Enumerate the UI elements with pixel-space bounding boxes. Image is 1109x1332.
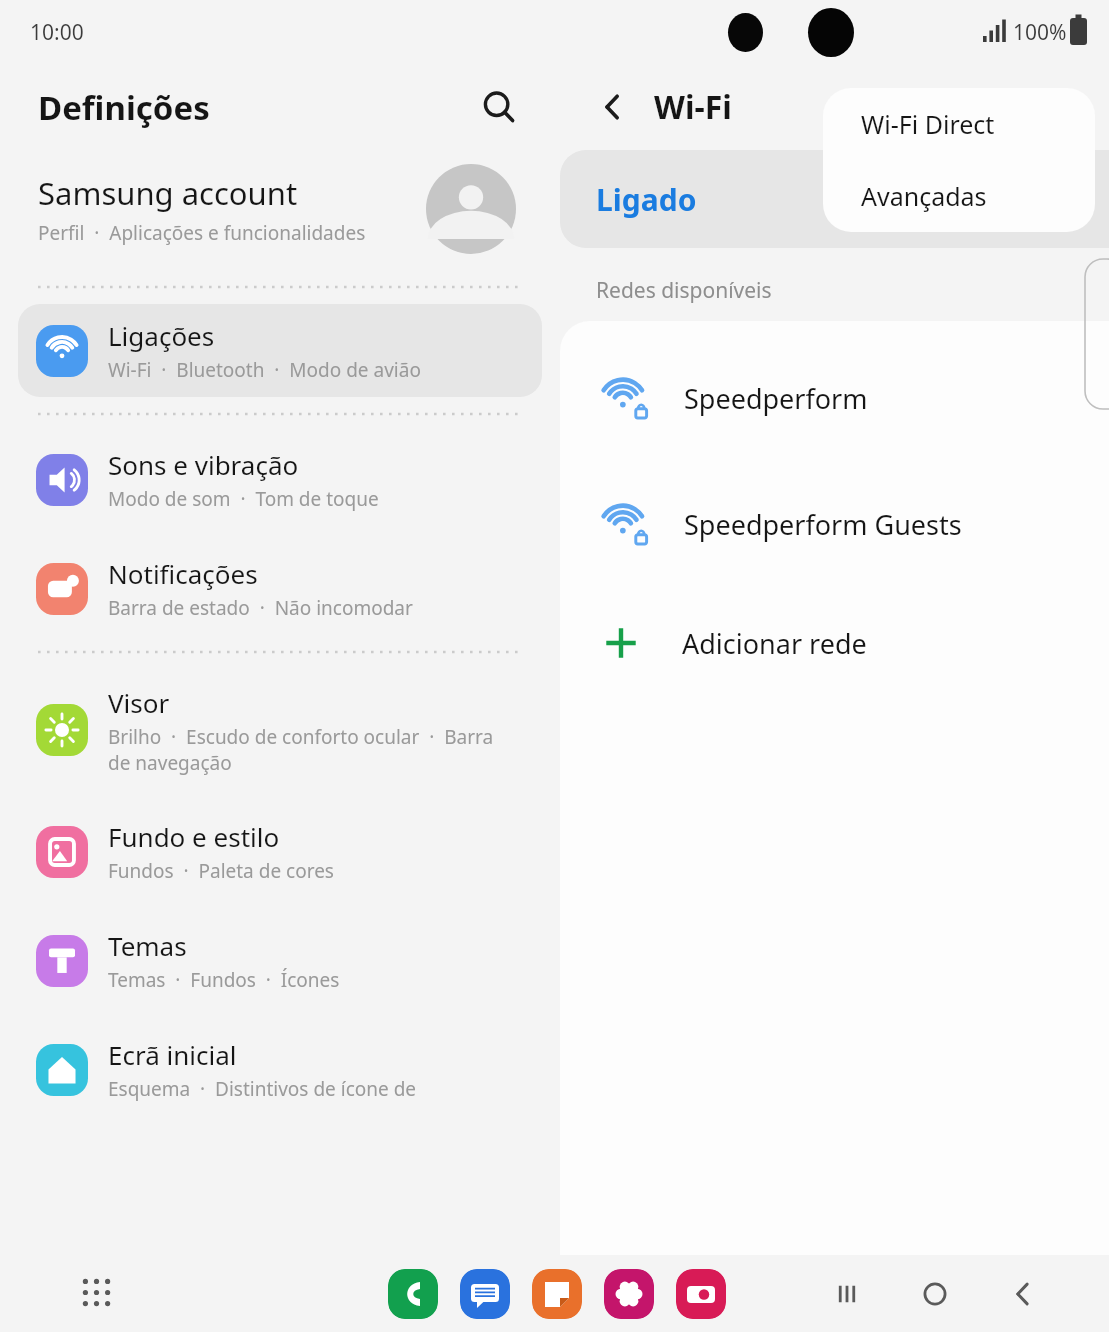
staticText: Definições — [38, 85, 210, 130]
staticText: Speedperform — [684, 380, 868, 417]
staticText: Speedperform Guests — [684, 506, 962, 543]
staticText: Ligado — [596, 179, 697, 220]
button[interactable]: Aplicações — [70, 1266, 126, 1322]
button[interactable]: Mensagens — [460, 1269, 510, 1319]
button[interactable]: Speedperform — [560, 335, 1109, 461]
button[interactable]: Telefone — [388, 1269, 438, 1319]
staticText: Fundos · Paleta de cores — [108, 858, 334, 884]
staticText: Wi-Fi Direct — [861, 107, 995, 141]
staticText: Samsung account — [38, 172, 298, 214]
button[interactable]: Início — [909, 1268, 961, 1320]
button[interactable]: Voltar — [997, 1268, 1049, 1320]
staticText: Adicionar rede — [682, 625, 867, 662]
button[interactable]: Câmara — [676, 1269, 726, 1319]
button[interactable]: Temas — [18, 914, 542, 1007]
staticText: Ecrã inicial — [108, 1037, 237, 1072]
button[interactable]: Adicionar rede — [560, 587, 1109, 699]
button[interactable]: Notificações — [18, 542, 542, 635]
staticText: Wi-Fi — [654, 85, 732, 129]
button[interactable]: Visor — [18, 671, 542, 789]
button[interactable]: Pesquisar — [472, 80, 526, 134]
staticText: Avançadas — [861, 179, 987, 213]
button[interactable]: Recentes — [821, 1268, 873, 1320]
staticText: Ligações — [108, 318, 215, 353]
button[interactable]: Samsung account — [0, 150, 560, 272]
button[interactable]: Ligações — [18, 304, 542, 397]
staticText: Sons e vibração — [108, 447, 299, 482]
button[interactable]: Galaxy Store — [604, 1269, 654, 1319]
staticText: Barra de estado · Não incomodar — [108, 595, 413, 621]
staticText: Brilho · Escudo de conforto ocular · Bar… — [108, 724, 494, 775]
button[interactable]: Sons e vibração — [18, 433, 542, 526]
staticText: 100% — [1013, 18, 1067, 47]
staticText: Esquema · Distintivos de ícone de — [108, 1076, 417, 1102]
staticText: Redes disponíveis — [596, 276, 772, 305]
button[interactable]: Avançadas — [823, 160, 1095, 232]
staticText: Perfil · Aplicações e funcionalidades — [38, 220, 366, 246]
button[interactable]: Ligado — [560, 150, 1109, 248]
button[interactable]: Fundo e estilo — [18, 805, 542, 898]
button[interactable]: Speedperform Guests — [560, 461, 1109, 587]
staticText: 10:00 — [30, 18, 84, 47]
button[interactable]: Voltar — [584, 78, 642, 136]
staticText: Fundo e estilo — [108, 819, 280, 854]
staticText: Visor — [108, 685, 170, 720]
staticText: Temas — [108, 928, 187, 963]
button[interactable]: Ecrã inicial — [18, 1023, 542, 1116]
staticText: Temas · Fundos · Ícones — [108, 967, 340, 993]
button[interactable]: Wi-Fi Direct — [823, 88, 1095, 160]
staticText: Modo de som · Tom de toque — [108, 486, 379, 512]
staticText: Wi-Fi · Bluetooth · Modo de avião — [108, 357, 421, 383]
button[interactable]: Notas — [532, 1269, 582, 1319]
staticText: Notificações — [108, 556, 258, 591]
